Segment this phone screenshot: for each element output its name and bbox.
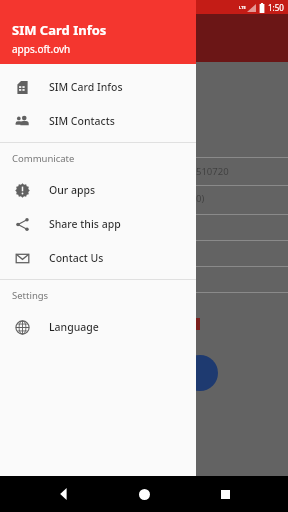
staticText: apps.oft.ovh — [12, 42, 71, 56]
staticText: Communicate — [12, 152, 75, 165]
staticText: SIM Contacts — [49, 114, 115, 128]
button[interactable]: Recents — [208, 477, 242, 511]
staticText: Language — [49, 320, 99, 334]
button[interactable]: Add — [182, 355, 218, 391]
staticText: Contact Us — [49, 251, 104, 265]
button[interactable]: SIM Contacts — [0, 104, 196, 138]
staticText: 510720 — [196, 165, 229, 178]
staticText: IMSI: (310260123456780) — [12, 175, 119, 187]
button[interactable]: Back — [47, 477, 81, 511]
staticText: 1:50 — [268, 2, 284, 13]
button[interactable]: Home — [127, 477, 161, 511]
staticText: Share this app — [49, 217, 121, 231]
button[interactable]: Language — [0, 310, 196, 344]
staticText: LTE — [239, 5, 246, 10]
button[interactable]: Our apps — [0, 173, 196, 207]
staticText: SIM Card Infos — [49, 80, 123, 94]
button[interactable]: SIM Card Infos — [0, 70, 196, 104]
staticText: 0) — [196, 192, 205, 205]
button[interactable]: Contact Us — [0, 241, 196, 275]
staticText: SIM Card Infos — [12, 21, 107, 39]
staticText: ICCID: 893301234567510720 — [12, 148, 134, 160]
staticText: Settings — [12, 289, 49, 302]
button[interactable]: Share this app — [0, 207, 196, 241]
staticText: Our apps — [49, 183, 96, 197]
